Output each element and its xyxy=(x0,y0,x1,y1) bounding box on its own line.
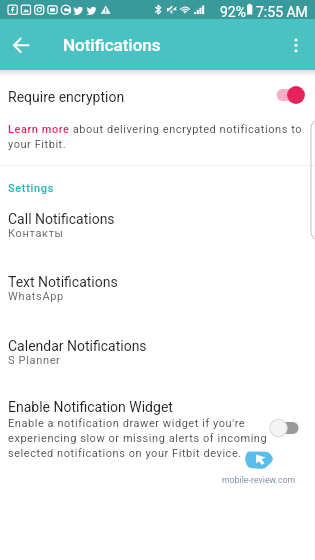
button[interactable]: More options xyxy=(275,24,315,66)
button[interactable]: Calendar Notifications xyxy=(0,335,315,398)
staticText: Enable Notification Widget xyxy=(8,399,173,415)
button[interactable]: Text Notifications xyxy=(0,271,315,334)
button[interactable]: Enable Notification Widget xyxy=(0,395,315,475)
staticText: 7:55 AM xyxy=(256,4,308,20)
staticText: Контакты xyxy=(8,227,64,240)
staticText: Calendar Notifications xyxy=(8,338,147,354)
staticText: 92% xyxy=(220,4,246,20)
button[interactable]: Call Notifications xyxy=(0,208,315,271)
staticText: Enable a notification drawer widget if y… xyxy=(8,417,272,459)
staticText: mobile-review.com xyxy=(222,475,296,485)
staticText: Call Notifications xyxy=(8,211,115,227)
button[interactable]: Back xyxy=(0,24,42,66)
staticText: Require encryption xyxy=(8,89,125,105)
staticText: Text Notifications xyxy=(8,274,118,290)
staticText: Settings xyxy=(8,182,54,195)
staticText: WhatsApp xyxy=(8,290,64,303)
staticText: S Planner xyxy=(8,354,61,367)
staticText: Learn more about delivering encrypted no… xyxy=(8,123,308,150)
button[interactable]: Require encryption xyxy=(0,76,315,116)
staticText: Notifications xyxy=(63,35,161,55)
